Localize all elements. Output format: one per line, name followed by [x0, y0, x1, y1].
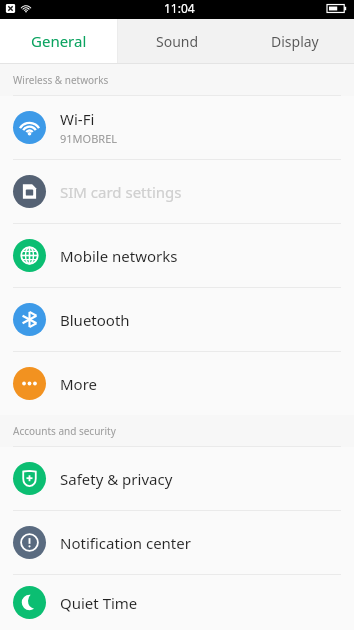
staticText: Sound [156, 32, 199, 51]
button[interactable]: Wi-Fi [0, 96, 354, 159]
staticText: Mobile networks [60, 246, 178, 266]
staticText: Display [271, 32, 319, 51]
button[interactable]: Quiet Time [0, 575, 354, 630]
staticText: Quiet Time [60, 593, 138, 613]
button[interactable]: General [0, 19, 117, 63]
button[interactable]: More [0, 352, 354, 415]
staticText: Wireless & networks [13, 73, 109, 87]
staticText: 91MOBREL [60, 131, 118, 146]
staticText: 11:04 [164, 0, 195, 16]
button[interactable]: Mobile networks [0, 224, 354, 287]
staticText: Accounts and security [13, 424, 116, 438]
button[interactable]: SIM card settings [0, 160, 354, 223]
staticText: Notification center [60, 533, 191, 553]
staticText: Bluetooth [60, 310, 130, 330]
button[interactable]: Bluetooth [0, 288, 354, 351]
button[interactable]: Notification center [0, 511, 354, 574]
button[interactable]: Sound [118, 19, 236, 63]
button[interactable]: Safety & privacy [0, 447, 354, 510]
staticText: General [31, 31, 87, 51]
staticText: SIM card settings [60, 182, 182, 202]
button[interactable]: Display [236, 19, 354, 63]
staticText: More [60, 374, 98, 394]
staticText: Wi-Fi [60, 109, 95, 129]
staticText: Safety & privacy [60, 469, 173, 489]
